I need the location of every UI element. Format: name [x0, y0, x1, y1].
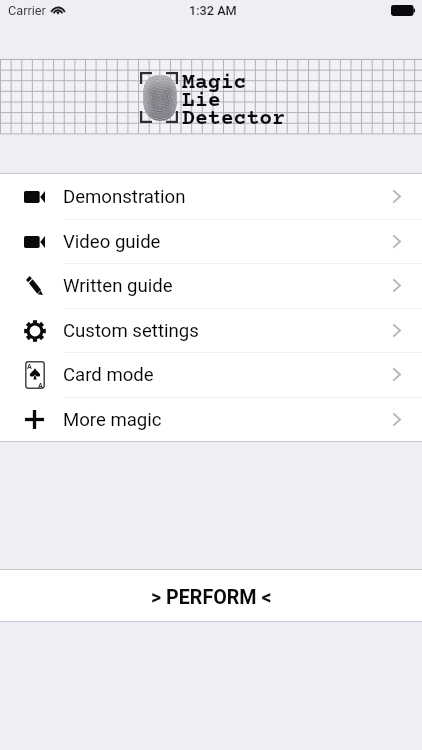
- staticText: Written guide: [63, 275, 173, 297]
- button[interactable]: > PERFORM <: [0, 570, 422, 621]
- staticText: A: [38, 381, 43, 389]
- button[interactable]: Custom settings: [0, 308, 422, 353]
- staticText: Demonstration: [63, 186, 186, 208]
- staticText: A: [27, 362, 32, 370]
- staticText: Custom settings: [63, 320, 199, 342]
- staticText: Lie: [182, 89, 221, 113]
- button[interactable]: Video guide: [0, 219, 422, 264]
- button[interactable]: A: [0, 352, 422, 397]
- staticText: Video guide: [63, 231, 161, 253]
- staticText: > PERFORM <: [151, 586, 272, 609]
- staticText: 1:32 AM: [189, 3, 237, 18]
- button[interactable]: More magic: [0, 397, 422, 442]
- staticText: Carrier: [8, 3, 46, 18]
- staticText: More magic: [63, 409, 162, 431]
- button[interactable]: Written guide: [0, 263, 422, 308]
- staticText: Detector: [182, 107, 286, 131]
- staticText: Magic: [182, 71, 247, 95]
- button[interactable]: Demonstration: [0, 174, 422, 219]
- staticText: Card mode: [63, 364, 154, 386]
